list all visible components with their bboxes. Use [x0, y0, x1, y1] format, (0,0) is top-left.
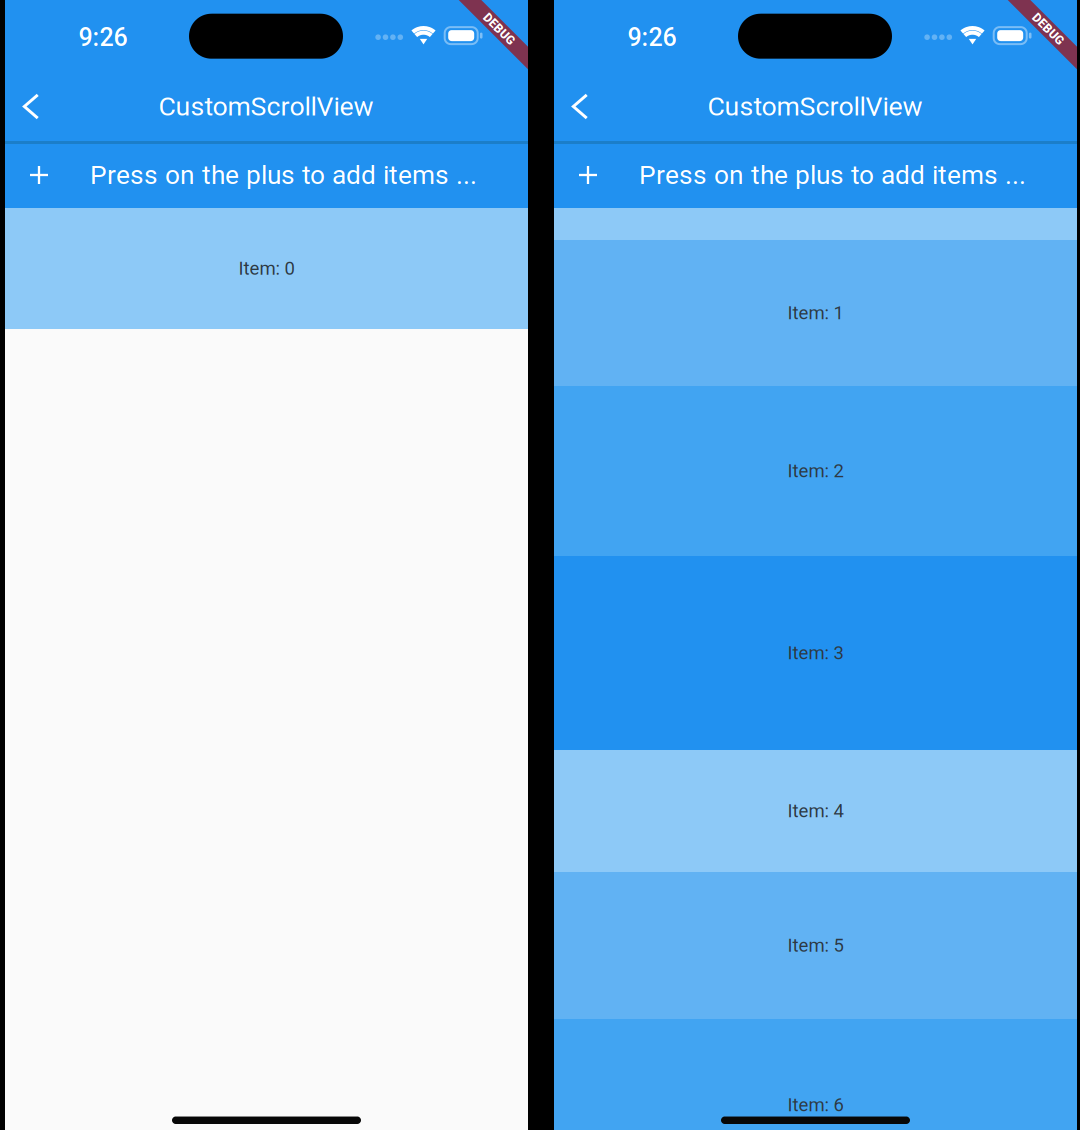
button[interactable]: Add item: [11, 146, 67, 204]
staticText: Press on the plus to add items ...: [639, 160, 1026, 190]
staticText: DEBUG: [1028, 22, 1067, 36]
staticText: Item: 5: [787, 935, 843, 956]
button[interactable]: Item: 2: [554, 386, 1077, 556]
button[interactable]: Item: 3: [554, 556, 1077, 750]
staticText: Item: 6: [787, 1094, 843, 1116]
staticText: 9:26: [627, 23, 676, 52]
staticText: Item: 0: [238, 258, 294, 279]
staticText: Item: 3: [787, 642, 843, 664]
button[interactable]: Item: 1: [554, 240, 1077, 386]
button[interactable]: Item: 4: [554, 750, 1077, 872]
button[interactable]: Item: 5: [554, 872, 1077, 1019]
staticText: Item: 4: [787, 800, 843, 822]
staticText: Press on the plus to add items ...: [90, 160, 477, 190]
button[interactable]: Add item: [560, 146, 616, 204]
staticText: CustomScrollView: [707, 91, 922, 122]
staticText: CustomScrollView: [158, 91, 373, 122]
button[interactable]: Back: [552, 75, 608, 137]
button[interactable]: Back: [3, 75, 59, 137]
staticText: Item: 2: [787, 460, 843, 482]
staticText: 9:26: [78, 23, 127, 52]
button[interactable]: Item: 6: [554, 1019, 1077, 1130]
staticText: DEBUG: [479, 22, 518, 36]
staticText: Item: 1: [787, 302, 843, 324]
button[interactable]: Item: 0: [5, 208, 528, 329]
